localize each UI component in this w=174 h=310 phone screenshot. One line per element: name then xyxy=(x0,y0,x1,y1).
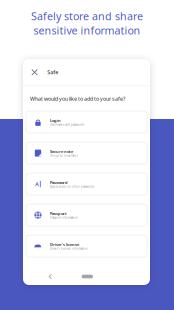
staticText: Passport xyxy=(50,211,67,216)
staticText: Login xyxy=(50,118,61,123)
staticText: A xyxy=(35,181,39,188)
staticText: Usernames and passwords xyxy=(50,123,84,126)
button[interactable]: Secure note xyxy=(26,142,147,164)
staticText: Safe xyxy=(47,69,58,76)
button[interactable]: Login xyxy=(26,111,147,133)
staticText: Driver's license xyxy=(50,242,79,247)
button[interactable]: Home xyxy=(82,275,93,278)
button[interactable]: Back xyxy=(48,273,53,279)
staticText: What would you like to add to your safe? xyxy=(30,95,125,102)
button[interactable]: Close xyxy=(31,69,38,76)
button[interactable]: A xyxy=(26,173,147,195)
staticText: Secure note xyxy=(50,149,73,154)
button[interactable]: Driver's license xyxy=(26,235,147,257)
staticText: Driver's license information xyxy=(50,247,88,250)
staticText: Password xyxy=(50,180,68,185)
staticText: Safely store and share xyxy=(31,9,143,23)
staticText: sensitive information xyxy=(33,23,140,37)
staticText: Things to remember xyxy=(50,154,78,157)
staticText: Passport information xyxy=(50,216,78,219)
button[interactable]: Passport xyxy=(26,204,147,226)
staticText: Access codes or other passwords xyxy=(50,185,94,188)
